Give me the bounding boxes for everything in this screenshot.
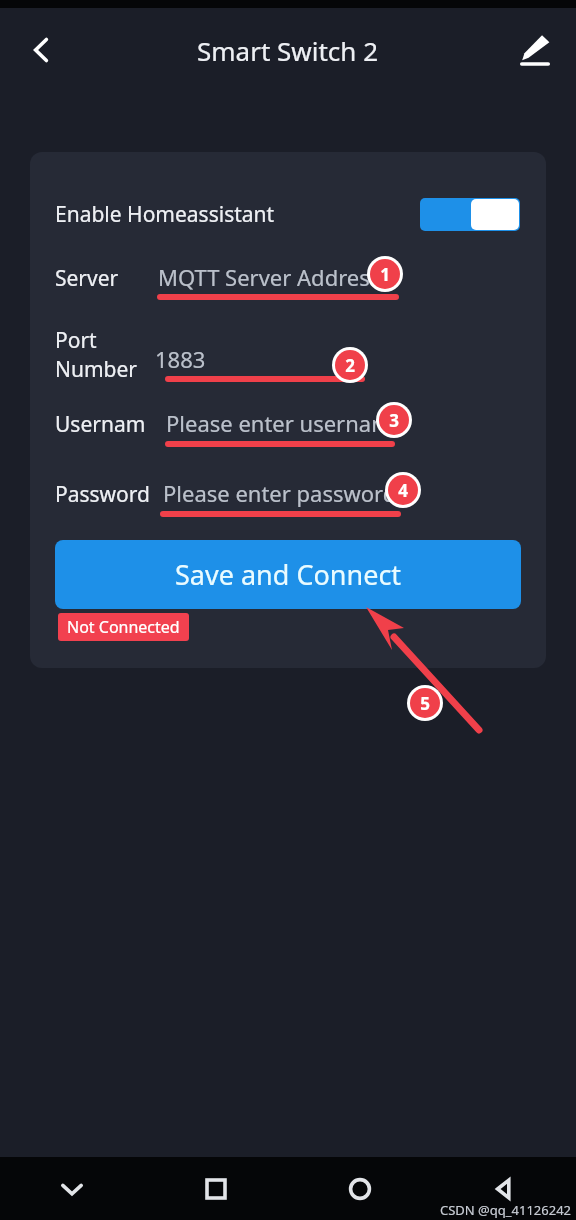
staticText: Password [55, 480, 150, 509]
button[interactable]: Port [30, 322, 546, 396]
button[interactable]: Back [432, 1157, 576, 1220]
staticText: Enable Homeassistant [55, 200, 275, 229]
button[interactable]: Password [30, 470, 546, 536]
staticText: 3 [389, 409, 399, 432]
button[interactable]: Enable Homeassistant [55, 192, 520, 236]
button[interactable]: Edit [510, 25, 560, 75]
staticText: Smart Switch 2 [197, 33, 379, 68]
button[interactable]: Back [16, 25, 66, 75]
staticText: Number [55, 355, 138, 384]
button[interactable]: Hide keyboard [0, 1157, 144, 1220]
staticText: 4 [398, 479, 408, 502]
staticText: 2 [345, 354, 355, 377]
staticText: MQTT Server Address [158, 262, 381, 292]
button[interactable]: Recent apps [144, 1157, 288, 1220]
staticText: 1883 [155, 344, 206, 374]
staticText: Please enter username [166, 408, 405, 438]
staticText: Username [55, 410, 157, 439]
staticText: CSDN @qq_41126242 [440, 1201, 572, 1219]
staticText: 1 [380, 263, 390, 286]
button[interactable]: Save and Connect [55, 540, 521, 609]
staticText: 5 [420, 692, 430, 715]
button[interactable]: Home [288, 1157, 432, 1220]
button[interactable]: Username [30, 400, 546, 468]
staticText: Not Connected [67, 616, 180, 638]
button[interactable]: Server [30, 256, 546, 318]
staticText: Please enter password [163, 478, 397, 508]
staticText: Server [55, 264, 119, 293]
staticText: Port [55, 326, 97, 355]
staticText: Save and Connect [175, 556, 402, 593]
